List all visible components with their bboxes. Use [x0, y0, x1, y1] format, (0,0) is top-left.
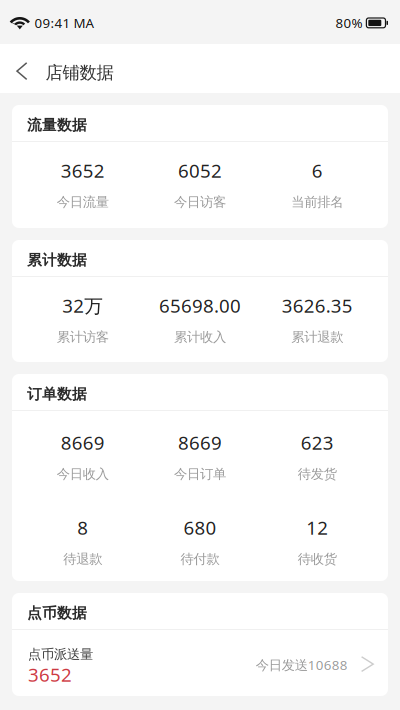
staticText: 3652 — [61, 158, 105, 183]
staticText: 09:41 MA — [35, 14, 95, 32]
staticText: 今日收入 — [57, 466, 109, 482]
staticText: 65698.00 — [159, 293, 241, 318]
staticText: 32万 — [62, 293, 103, 318]
staticText: 累计退款 — [291, 329, 343, 345]
staticText: 3652 — [28, 662, 72, 687]
staticText: 今日订单 — [174, 466, 226, 482]
staticText: 流量数据 — [27, 116, 87, 134]
staticText: 今日流量 — [57, 194, 109, 210]
staticText: 累计数据 — [27, 251, 87, 269]
staticText: 8669 — [61, 430, 105, 455]
button[interactable]: Back — [0, 44, 46, 93]
staticText: 680 — [183, 515, 216, 540]
staticText: 点币数据 — [27, 604, 87, 622]
staticText: 累计收入 — [174, 329, 226, 345]
staticText: 6052 — [178, 158, 222, 183]
staticText: 今日访客 — [174, 194, 226, 210]
staticText: 3626.35 — [282, 293, 353, 318]
staticText: 8 — [77, 515, 88, 540]
staticText: 待发货 — [298, 466, 337, 482]
staticText: 待收货 — [298, 551, 337, 567]
staticText: 8669 — [178, 430, 222, 455]
staticText: 点币派送量 — [28, 646, 93, 662]
staticText: 80% — [335, 14, 362, 32]
staticText: 订单数据 — [27, 385, 87, 403]
staticText: 待退款 — [63, 551, 102, 567]
button[interactable]: 点币派送量 — [12, 630, 388, 696]
staticText: 12 — [306, 515, 328, 540]
staticText: 累计访客 — [57, 329, 109, 345]
staticText: 当前排名 — [291, 194, 343, 210]
staticText: 店铺数据 — [46, 62, 114, 83]
staticText: 6 — [312, 158, 323, 183]
staticText: 待付款 — [180, 551, 219, 567]
staticText: 今日发送10688 — [256, 656, 348, 674]
staticText: 623 — [301, 430, 334, 455]
